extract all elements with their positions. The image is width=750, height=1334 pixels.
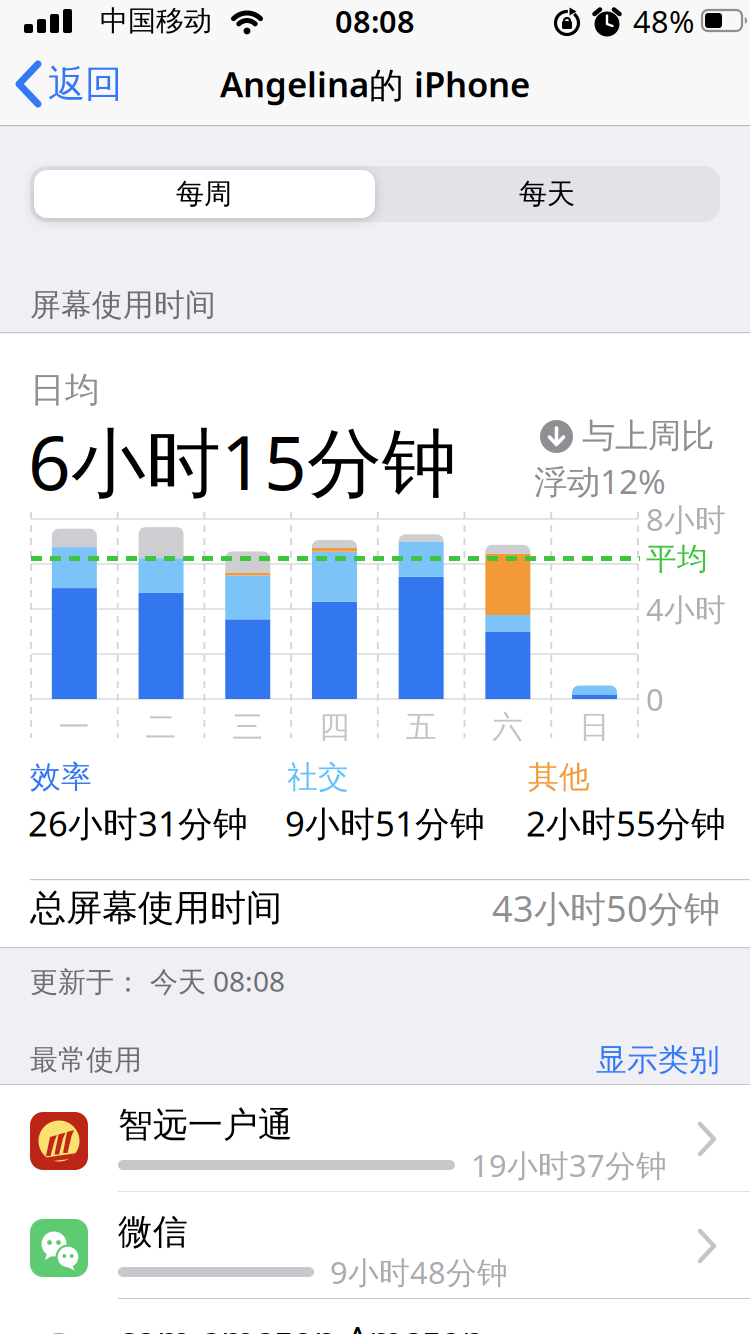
staticText: 43小时50分钟 [492, 884, 720, 932]
staticText: 与上周比 [582, 415, 714, 456]
staticText: 日均 [30, 369, 100, 411]
staticText: 四 [319, 708, 350, 746]
staticText: 微信 [118, 1211, 188, 1253]
staticText: 浮动12% [534, 459, 666, 503]
staticText: 社交 [287, 758, 349, 796]
button[interactable]: com.amazon.Amazon [0, 1299, 750, 1334]
button[interactable]: 每周 [30, 166, 375, 222]
staticText: 总屏幕使用时间 [30, 886, 282, 930]
button[interactable]: 每天 [375, 166, 720, 222]
button[interactable]: 智远一户通 [0, 1085, 750, 1334]
button[interactable]: 显示类别 [0, 0, 720, 40]
staticText: 返回 [48, 61, 122, 107]
staticText: 一 [59, 708, 90, 746]
staticText: 三 [232, 708, 263, 746]
staticText: 19小时37分钟 [471, 1145, 667, 1185]
staticText: 二 [146, 708, 177, 746]
staticText: 9小时51分钟 [285, 800, 485, 846]
staticText: 2小时55分钟 [526, 800, 726, 846]
staticText: 中国移动 [100, 4, 212, 38]
staticText: 26小时31分钟 [28, 800, 248, 846]
staticText: 其他 [528, 758, 590, 796]
staticText: 08:08 [335, 1, 415, 41]
staticText: 屏幕使用时间 [30, 286, 216, 324]
staticText: 更新于： 今天 08:08 [30, 962, 285, 1000]
staticText: 9小时48分钟 [330, 1252, 508, 1292]
staticText: Angelina的 iPhone [220, 61, 530, 107]
staticText: 6小时15分钟 [28, 411, 457, 511]
button[interactable]: 返回 [0, 54, 702, 114]
staticText: 0 [646, 679, 664, 719]
staticText: 48% [633, 1, 694, 41]
staticText: 每天 [519, 177, 575, 211]
staticText: 平均 [646, 540, 708, 578]
staticText: 效率 [30, 758, 92, 796]
staticText: 智远一户通 [118, 1104, 293, 1146]
staticText: 六 [492, 708, 523, 746]
staticText: 显示类别 [596, 1041, 720, 1079]
staticText: 4小时 [646, 589, 726, 629]
staticText: com.amazon.Amazon [118, 1315, 484, 1334]
staticText: 最常使用 [30, 1043, 142, 1077]
staticText: 五 [406, 708, 437, 746]
staticText: 每周 [176, 177, 232, 211]
button[interactable]: 微信 [0, 1192, 750, 1334]
staticText: 8小时 [646, 499, 726, 539]
staticText: 日 [579, 708, 610, 746]
